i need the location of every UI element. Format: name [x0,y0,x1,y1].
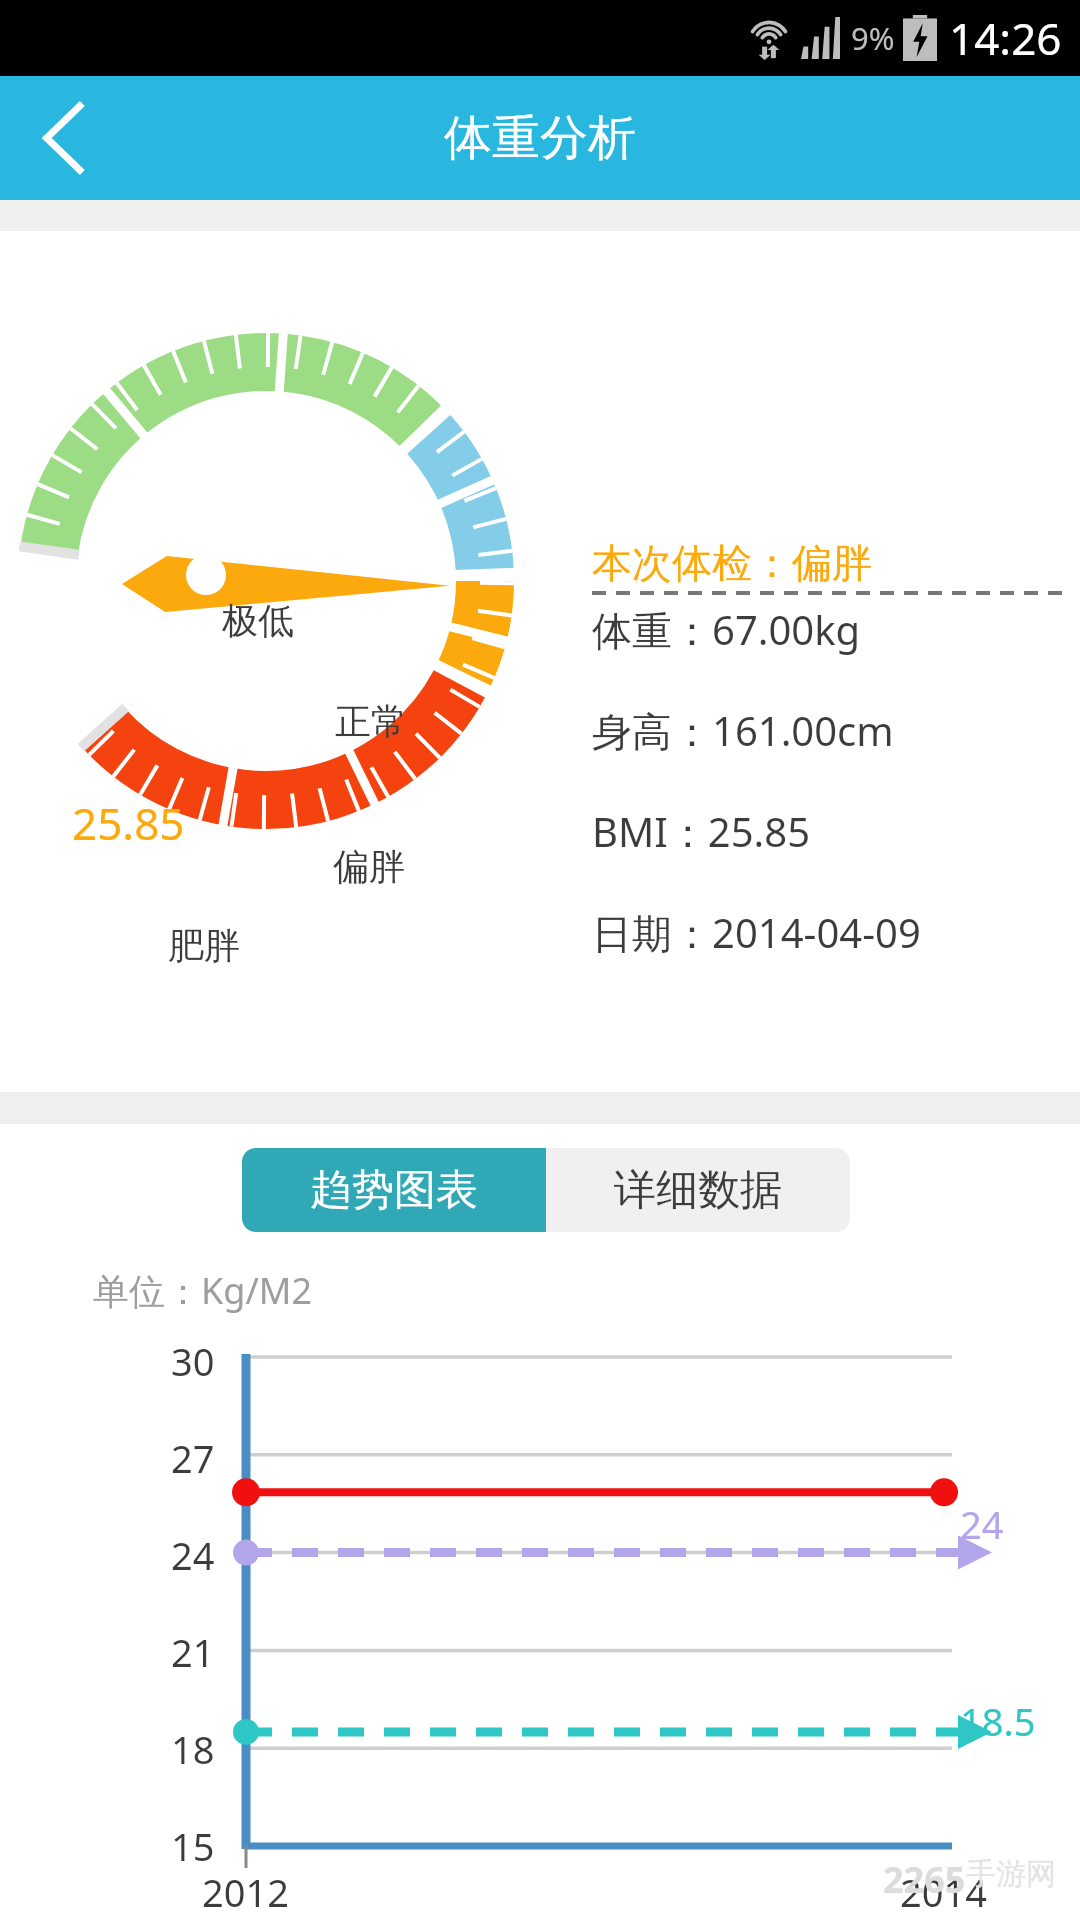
staticText: 24 [171,1529,215,1581]
staticText: 9% [851,17,895,59]
staticText: 21 [171,1626,215,1678]
staticText: 正常 [335,699,407,744]
button[interactable]: 趋势图表 [242,1148,546,1232]
staticText: 15 [171,1820,215,1872]
staticText: 趋势图表 [310,1164,478,1217]
staticText: 极低 [222,598,294,643]
button[interactable]: Back [18,90,114,186]
staticText: 2012 [202,1866,289,1918]
staticText: 27 [171,1432,215,1484]
staticText: 14:26 [949,8,1062,68]
staticText: 30 [171,1335,215,1387]
staticText: 2265 [883,1855,966,1904]
staticText: 偏胖 [333,844,405,889]
staticText: 本次体检：偏胖 [592,538,872,588]
staticText: 身高：161.00cm [592,703,894,758]
staticText: 肥胖 [168,923,240,968]
staticText: 单位：Kg/M2 [93,1266,313,1315]
staticText: 18 [171,1723,215,1775]
staticText: 体重：67.00kg [592,602,861,657]
staticText: BMI：25.85 [592,804,811,859]
staticText: 18.5 [960,1695,1036,1747]
staticText: 体重分析 [444,108,636,168]
staticText: 详细数据 [614,1164,782,1217]
staticText: 手游网 [966,1855,1056,1893]
staticText: 2014 [900,1866,987,1918]
staticText: 24 [960,1498,1004,1550]
staticText: 25.85 [72,793,185,853]
button[interactable]: 详细数据 [546,1148,850,1232]
staticText: 日期：2014-04-09 [592,905,921,960]
